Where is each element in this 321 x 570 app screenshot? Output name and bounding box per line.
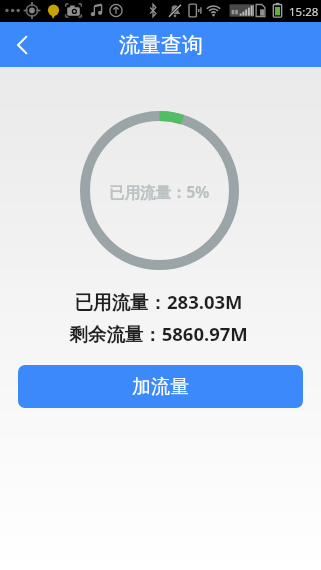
staticText: 流量查询 xyxy=(119,32,203,58)
staticText: 剩余流量：5860.97M xyxy=(0,321,319,346)
button[interactable]: 加流量 xyxy=(18,365,303,408)
staticText: 已用流量：5% xyxy=(109,181,210,202)
staticText: 加流量 xyxy=(132,375,189,399)
staticText: 15:28 xyxy=(289,4,319,20)
button[interactable]: Back xyxy=(0,22,44,67)
staticText: 已用流量：283.03M xyxy=(0,289,319,314)
